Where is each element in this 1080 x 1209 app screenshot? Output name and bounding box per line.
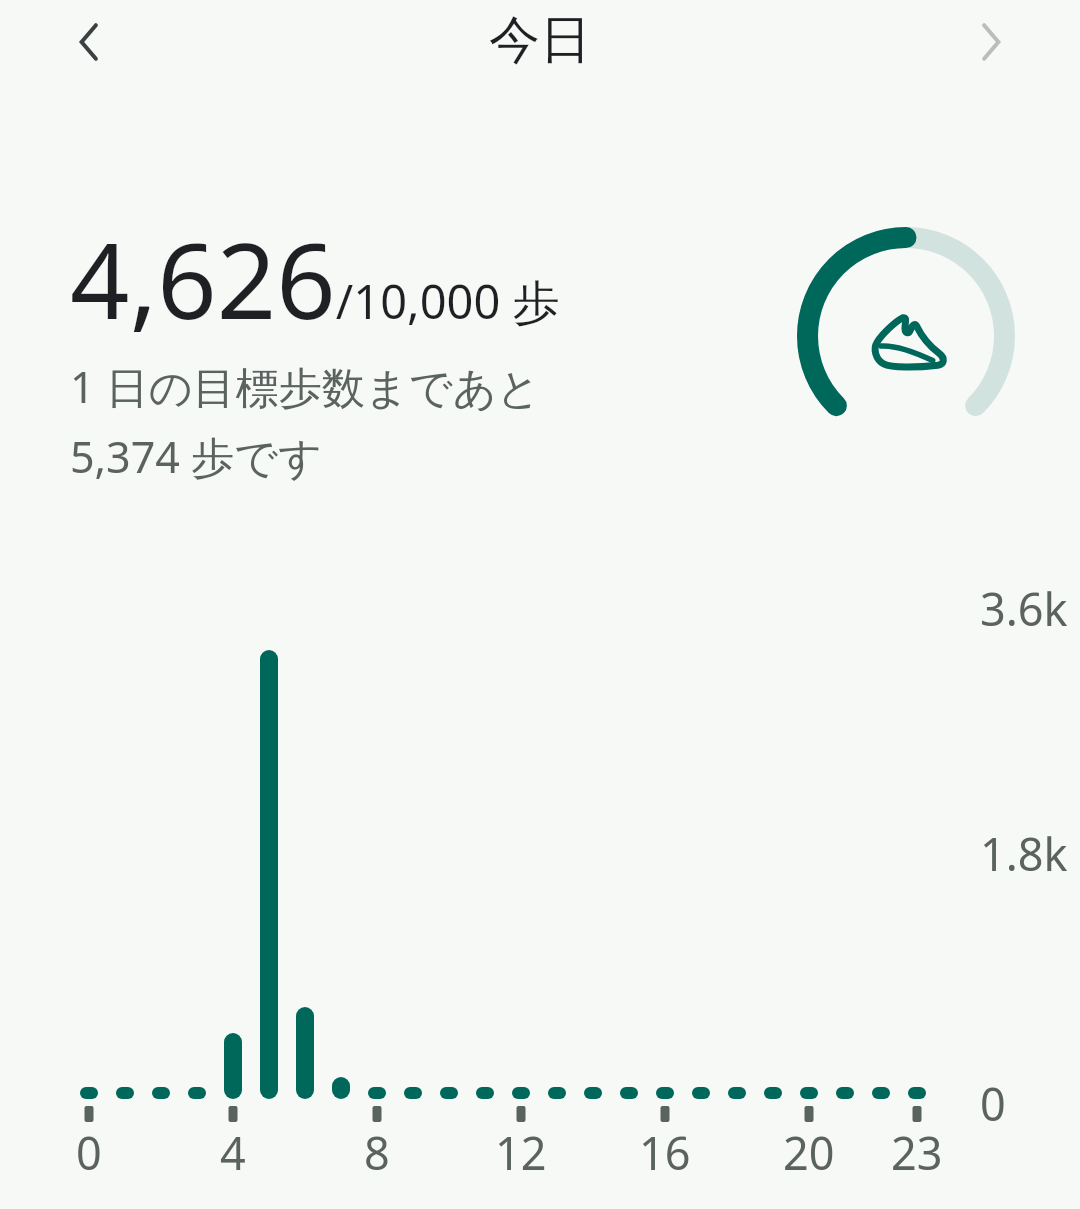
staticText: 16	[639, 1122, 691, 1176]
staticText: 1.8k	[980, 823, 1068, 884]
staticText: 4	[220, 1122, 246, 1176]
staticText: 8	[364, 1122, 390, 1176]
staticText: 0	[980, 1073, 1006, 1134]
button[interactable]: 次の日	[938, 4, 1042, 80]
staticText: 23	[891, 1122, 943, 1176]
staticText: 4,626/10,000 歩	[70, 208, 560, 350]
button[interactable]: 前の日	[38, 4, 142, 80]
staticText: 1 日の目標歩数まであと 5,374 歩です	[70, 357, 541, 485]
staticText: 0	[76, 1122, 102, 1176]
staticText: 3.6k	[980, 578, 1068, 639]
staticText: 今日	[0, 8, 1080, 1209]
staticText: 12	[495, 1122, 547, 1176]
staticText: 20	[783, 1122, 835, 1176]
